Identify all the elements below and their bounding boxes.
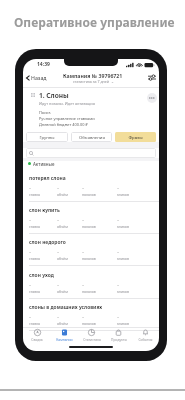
staticText: Объявления — [79, 134, 105, 140]
staticText: объём — [57, 321, 68, 326]
staticText: – — [82, 249, 85, 255]
staticText: – — [117, 282, 120, 288]
staticText: показов — [82, 289, 96, 294]
staticText: – — [57, 185, 60, 191]
staticText: Статистика — [83, 337, 101, 341]
staticText: ставка — [29, 321, 41, 326]
staticText: Идут показы. Идет активация — [39, 101, 95, 106]
staticText: – — [117, 314, 120, 320]
staticText: – — [57, 249, 60, 255]
button[interactable]: Продукты — [105, 329, 132, 341]
staticText: – — [57, 282, 60, 288]
button[interactable]: слон уход — [23, 267, 159, 299]
button[interactable]: Поиск — [26, 148, 156, 158]
staticText: – — [29, 282, 32, 288]
staticText: Ручное управление ставками — [39, 116, 95, 121]
button[interactable]: слон недорого — [23, 234, 159, 266]
staticText: кликов — [117, 289, 129, 294]
staticText: – — [82, 185, 85, 191]
staticText: показов — [82, 192, 96, 197]
staticText: статистика за 7 дней ⌄ — [73, 79, 114, 84]
staticText: Назад — [31, 74, 47, 81]
staticText: – — [29, 249, 32, 255]
button[interactable]: Сводка — [23, 329, 51, 341]
button[interactable]: Фразы — [115, 132, 156, 142]
staticText: Активные — [33, 161, 55, 167]
staticText: – — [117, 217, 120, 223]
staticText: объём — [57, 192, 68, 197]
staticText: Оперативное управление — [14, 14, 175, 30]
staticText: слоны в домашних условиях — [29, 304, 103, 311]
button[interactable]: Назад — [25, 74, 48, 81]
staticText: показов — [82, 321, 96, 326]
button[interactable]: Объявления — [71, 132, 112, 142]
staticText: Кампания № 39796721 — [63, 72, 123, 79]
button[interactable]: Настройки фильтра — [146, 72, 157, 83]
staticText: объём — [57, 224, 68, 229]
button[interactable]: Группы — [26, 132, 68, 142]
staticText: – — [29, 314, 32, 320]
button[interactable]: Кампании — [51, 329, 78, 341]
staticText: Группы — [39, 134, 55, 140]
staticText: слон недорого — [29, 239, 66, 246]
staticText: Поиск — [39, 110, 51, 115]
staticText: слон уход — [29, 272, 54, 279]
staticText: – — [82, 282, 85, 288]
staticText: Кампании — [56, 337, 73, 341]
button[interactable]: слон купить — [23, 202, 159, 234]
staticText: Сводка — [31, 337, 43, 341]
staticText: объём — [57, 289, 68, 294]
staticText: – — [117, 185, 120, 191]
staticText: – — [82, 217, 85, 223]
staticText: кликов — [117, 321, 129, 326]
staticText: ставка — [29, 192, 41, 197]
staticText: 1. Слоны — [39, 91, 69, 100]
staticText: слон купить — [29, 207, 60, 214]
staticText: События — [138, 337, 153, 341]
button[interactable]: События — [132, 329, 159, 341]
staticText: кликов — [117, 224, 129, 229]
button[interactable]: Ещё — [147, 93, 157, 103]
button[interactable]: Статистика — [78, 329, 105, 341]
staticText: Фразы — [128, 134, 143, 140]
staticText: Дневной бюджет 400.00 ₽ — [39, 122, 88, 127]
staticText: кликов — [117, 256, 129, 261]
staticText: потерял слона — [29, 175, 66, 182]
button[interactable]: потерял слона — [23, 170, 159, 202]
staticText: 14:39 — [37, 61, 50, 68]
staticText: показов — [82, 256, 96, 261]
staticText: – — [82, 314, 85, 320]
staticText: ставка — [29, 256, 41, 261]
staticText: – — [117, 249, 120, 255]
staticText: показов — [82, 224, 96, 229]
staticText: Продукты — [111, 337, 127, 341]
staticText: кликов — [117, 192, 129, 197]
staticText: ставка — [29, 224, 41, 229]
staticText: – — [29, 217, 32, 223]
staticText: – — [29, 185, 32, 191]
staticText: ставка — [29, 289, 41, 294]
staticText: – — [57, 217, 60, 223]
staticText: объём — [57, 256, 68, 261]
button[interactable]: слоны в домашних условиях — [23, 299, 159, 331]
staticText: – — [57, 314, 60, 320]
